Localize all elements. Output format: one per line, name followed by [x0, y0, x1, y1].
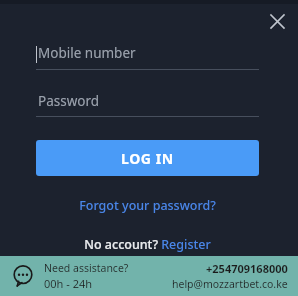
staticText: LOG IN [121, 149, 174, 168]
staticText: Password [38, 92, 100, 110]
button[interactable]: LOG IN [36, 140, 259, 176]
staticText: 00h - 24h [44, 276, 93, 291]
button[interactable]: Password [36, 92, 259, 110]
button[interactable]: Close [262, 6, 292, 36]
button[interactable]: Chat support [0, 256, 298, 296]
button[interactable]: Mobile number [36, 42, 259, 63]
staticText: No account? Register [84, 236, 211, 253]
staticText: Mobile number [38, 44, 136, 62]
staticText: +254709168000 [206, 261, 288, 276]
staticText: Need assistance? [44, 261, 129, 275]
button[interactable]: Forgot your password? [36, 197, 259, 214]
other: Chat support [12, 265, 34, 287]
staticText: help@mozzartbet.co.ke [172, 277, 288, 291]
button[interactable]: No account? Register [36, 236, 259, 253]
staticText: Forgot your password? [79, 197, 216, 214]
